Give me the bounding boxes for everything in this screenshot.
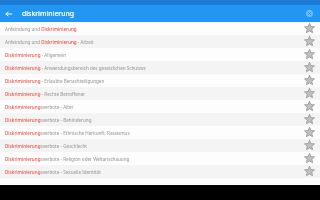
button[interactable]: Bookmark	[298, 152, 320, 165]
button[interactable]: Diskriminierungsverbote - Behinderung	[0, 113, 320, 126]
button[interactable]: Bookmark	[298, 126, 320, 139]
button[interactable]: Diskriminierungsverbote - Sexuelle Ident…	[0, 165, 320, 178]
staticText: Diskriminierungsverbote - Religion oder …	[5, 156, 298, 162]
button[interactable]: Diskriminierungsverbote - Religion oder …	[0, 152, 320, 165]
staticText: Diskriminierung - Allgemein	[5, 52, 298, 58]
button[interactable]: Bookmark	[298, 87, 320, 100]
button[interactable]: Bookmark	[298, 139, 320, 152]
button[interactable]: Diskriminierung - Anwendungsbereich des …	[0, 61, 320, 74]
staticText: Diskriminierung - Anwendungsbereich des …	[5, 65, 298, 71]
staticText: Diskriminierung - Rechte Betroffener	[5, 91, 298, 97]
button[interactable]: Bookmark	[298, 165, 320, 178]
button[interactable]: Diskriminierung - Erlaubte Benachteiligu…	[0, 74, 320, 87]
button[interactable]: Diskriminierung - Rechte Betroffener	[0, 87, 320, 100]
staticText: Anfeindung und Diskriminierung - Arbeit	[5, 39, 298, 45]
button[interactable]: Back	[0, 5, 17, 22]
button[interactable]: Bookmark	[298, 48, 320, 61]
button[interactable]: Anfeindung und Diskriminierung - Arbeit	[0, 35, 320, 48]
staticText: Diskriminierungsverbote - Sexuelle Ident…	[5, 169, 298, 175]
staticText: Diskriminierungsverbote - Geschlecht	[5, 143, 298, 149]
button[interactable]: Clear search	[301, 5, 318, 22]
button[interactable]: Bookmark	[298, 100, 320, 113]
staticText: diskriminierung	[22, 9, 75, 19]
button[interactable]: diskriminierung	[17, 5, 301, 22]
button[interactable]: Diskriminierung - Allgemein	[0, 48, 320, 61]
button[interactable]: Bookmark	[298, 22, 320, 35]
button[interactable]: Diskriminierungsverbote - Ethnische Herk…	[0, 126, 320, 139]
button[interactable]: Bookmark	[298, 35, 320, 48]
staticText: Diskriminierung - Erlaubte Benachteiligu…	[5, 78, 298, 84]
staticText: Diskriminierungsverbote - Alter	[5, 104, 298, 110]
button[interactable]: Diskriminierungsverbote - Geschlecht	[0, 139, 320, 152]
staticText: Anfeindung und Diskriminierung	[5, 26, 298, 32]
staticText: Diskriminierungsverbote - Ethnische Herk…	[5, 130, 298, 136]
button[interactable]: Diskriminierungsverbote - Alter	[0, 100, 320, 113]
staticText: Diskriminierungsverbote - Behinderung	[5, 117, 298, 123]
button[interactable]: Bookmark	[298, 113, 320, 126]
button[interactable]: Bookmark	[298, 74, 320, 87]
button[interactable]: Anfeindung und Diskriminierung	[0, 22, 320, 35]
button[interactable]: Bookmark	[298, 61, 320, 74]
